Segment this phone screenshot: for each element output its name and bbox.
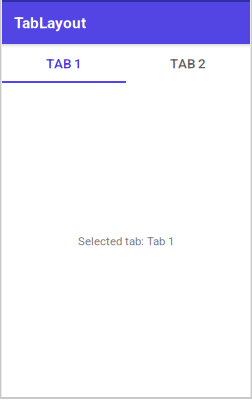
staticText: TabLayout [14, 14, 86, 32]
button[interactable]: TAB 1 [2, 44, 126, 83]
staticText: TAB 1 [46, 56, 82, 72]
staticText: TAB 2 [170, 56, 206, 72]
staticText: Selected tab: Tab 1 [78, 235, 174, 248]
button[interactable]: TAB 2 [126, 44, 250, 83]
